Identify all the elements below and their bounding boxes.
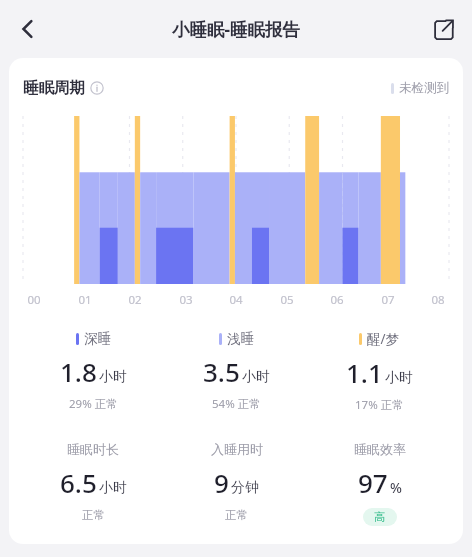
- button[interactable]: 睡眠效率: [308, 441, 451, 526]
- staticText: 小时: [242, 368, 270, 386]
- staticText: 3.5: [203, 354, 240, 389]
- staticText: 深睡: [84, 330, 111, 347]
- staticText: 1.8: [60, 354, 97, 389]
- staticText: 6.5: [60, 465, 97, 500]
- staticText: 00: [27, 292, 41, 308]
- staticText: 入睡用时: [211, 441, 263, 457]
- staticText: 01: [78, 292, 92, 308]
- button[interactable]: 睡眠周期: [23, 78, 104, 98]
- button[interactable]: 深睡: [21, 330, 165, 412]
- staticText: 03: [179, 292, 193, 308]
- staticText: 小时: [385, 369, 413, 387]
- staticText: 正常: [82, 508, 105, 522]
- staticText: 小睡眠-睡眠报告: [172, 17, 301, 41]
- button[interactable]: Share: [422, 8, 464, 50]
- staticText: 睡眠时长: [67, 441, 119, 457]
- staticText: 睡眠效率: [354, 441, 406, 457]
- staticText: 07: [381, 292, 395, 308]
- staticText: 小时: [99, 479, 127, 497]
- staticText: 08: [431, 292, 445, 308]
- staticText: 高: [374, 510, 386, 524]
- staticText: 29% 正常: [69, 396, 118, 412]
- staticText: 54% 正常: [212, 396, 261, 412]
- staticText: 9: [214, 465, 229, 500]
- staticText: 05: [280, 292, 294, 308]
- staticText: 分钟: [231, 479, 259, 497]
- staticText: %: [390, 478, 402, 497]
- staticText: 正常: [225, 508, 248, 522]
- staticText: 1.1: [346, 355, 383, 390]
- staticText: 97: [358, 465, 388, 500]
- button[interactable]: Back: [6, 7, 50, 51]
- staticText: 小时: [99, 368, 127, 386]
- button[interactable]: 睡眠时长: [21, 441, 165, 522]
- button[interactable]: 浅睡: [165, 330, 308, 412]
- staticText: 06: [330, 292, 344, 308]
- staticText: 未检测到: [399, 80, 449, 96]
- staticText: 04: [229, 292, 243, 308]
- staticText: 醒/梦: [367, 330, 400, 348]
- button[interactable]: 入睡用时: [165, 441, 308, 522]
- staticText: 17% 正常: [355, 397, 404, 413]
- staticText: 睡眠周期: [23, 78, 85, 98]
- button[interactable]: 醒/梦: [308, 330, 451, 413]
- staticText: 02: [128, 292, 142, 308]
- staticText: 浅睡: [227, 330, 254, 347]
